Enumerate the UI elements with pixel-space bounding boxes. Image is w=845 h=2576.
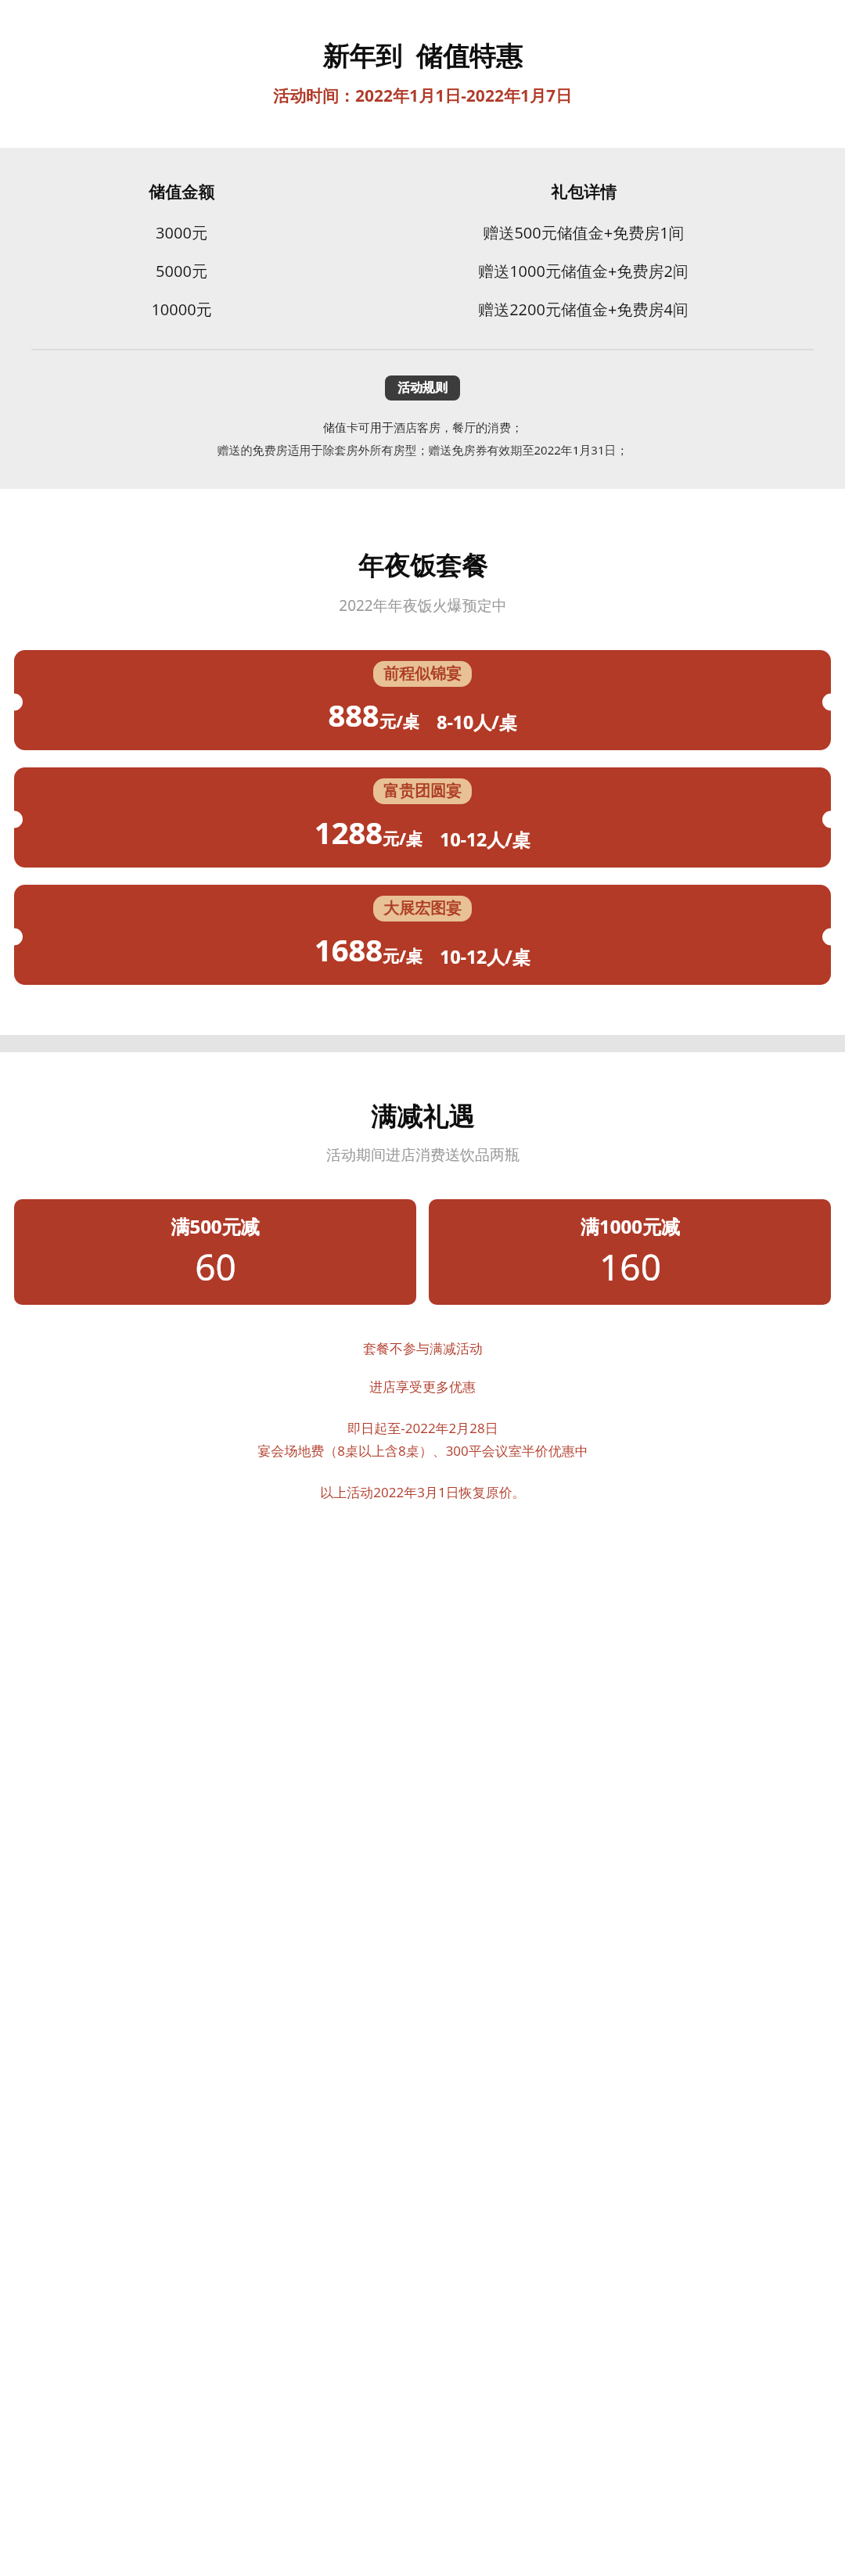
staticText: 2022年年夜饭火爆预定中 [339,595,507,616]
staticText: 1288 [315,812,383,853]
staticText: 元/桌 [383,828,422,850]
staticText: 年夜饭套餐 [358,550,487,583]
staticText: 进店享受更多优惠 [369,1379,476,1396]
staticText: 160 [599,1242,661,1292]
button[interactable]: 前程似锦宴 [14,650,831,750]
staticText: 富贵团圆宴 [383,781,462,801]
staticText: 储值卡可用于酒店客房，餐厅的消费； [323,421,523,436]
staticText: 活动期间进店消费送饮品两瓶 [326,1146,520,1165]
staticText: 8-10人/桌 [437,710,517,734]
button[interactable]: 满1000元减 [429,1199,831,1305]
button[interactable]: 大展宏图宴 [14,885,831,985]
staticText: 活动规则 [397,380,448,396]
staticText: 前程似锦宴 [383,664,462,684]
staticText: 5000元 [156,260,207,282]
staticText: 元/桌 [379,710,419,733]
staticText: 礼包详情 [551,182,617,203]
staticText: 3000元 [156,222,207,243]
staticText: 储值金额 [149,182,214,203]
staticText: 满500元减 [171,1213,260,1239]
button[interactable]: 活动规则 [385,375,460,401]
staticText: 活动时间：2022年1月1日-2022年1月7日 [273,84,572,107]
staticText: 赠送500元储值金+免费房1间 [483,222,685,243]
staticText: 大展宏图宴 [383,899,462,918]
staticText: 宴会场地费（8桌以上含8桌）、300平会议室半价优惠中 [257,1442,588,1460]
staticText: 套餐不参与满减活动 [363,1341,483,1357]
staticText: 60 [195,1242,236,1292]
staticText: 即日起至-2022年2月28日 [347,1419,498,1437]
staticText: 满1000元减 [581,1213,680,1239]
staticText: 10-12人/桌 [440,827,530,851]
staticText: 10000元 [151,299,212,320]
staticText: 888 [328,695,379,735]
staticText: 10-12人/桌 [440,944,530,968]
staticText: 赠送2200元储值金+免费房4间 [478,299,689,320]
staticText: 赠送1000元储值金+免费房2间 [478,260,689,282]
staticText: 赠送的免费房适用于除套房外所有房型；赠送免房券有效期至2022年1月31日； [217,442,628,458]
staticText: 新年到 储值特惠 [322,38,523,74]
staticText: 满减礼遇 [371,1101,474,1134]
staticText: 元/桌 [383,945,422,968]
button[interactable]: 满500元减 [14,1199,416,1305]
staticText: 以上活动2022年3月1日恢复原价。 [320,1483,526,1501]
staticText: 1688 [315,929,383,970]
button[interactable]: 富贵团圆宴 [14,767,831,868]
